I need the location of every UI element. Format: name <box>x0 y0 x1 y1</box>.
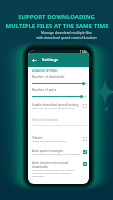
staticText: Settings <box>42 57 58 63</box>
button[interactable]: Number of parts <box>32 88 87 98</box>
staticText: Vibrate <box>32 136 43 140</box>
staticText: Auto resume downloading when network int… <box>32 169 81 178</box>
staticText: Manage download multiple files <box>41 30 92 35</box>
button[interactable]: Speed of download <box>32 118 87 122</box>
button[interactable]: Back <box>32 58 37 63</box>
staticText: Auto resume interrupted downloads <box>32 161 81 169</box>
button[interactable]: Auto resume interrupted downloads <box>32 161 87 178</box>
staticText: Automatically open download link on clip… <box>32 153 81 156</box>
button[interactable]: Enable download speed limiting <box>32 103 87 110</box>
staticText: Number of parts <box>32 88 57 92</box>
button[interactable]: Number of downloads <box>32 75 87 85</box>
staticText: Speed of download <box>32 118 59 122</box>
staticText: MULTIPLE FILES AT THE SAME TIME <box>5 22 109 30</box>
staticText: Limit traffic control your download spee… <box>32 107 75 110</box>
staticText: SUPPORT DOWNLOADING <box>18 13 95 21</box>
button[interactable]: Auto spam messages <box>32 149 87 156</box>
staticText: 11:45 <box>80 50 87 53</box>
button[interactable]: Vibrate <box>83 137 87 141</box>
staticText: Number of downloads <box>32 75 65 79</box>
staticText: Auto spam messages <box>32 149 63 153</box>
staticText: Enable download speed limiting <box>32 103 79 107</box>
button[interactable]: Auto resume interrupted downloads <box>83 162 87 166</box>
button[interactable]: Enable download speed limiting <box>83 104 87 108</box>
staticText: ADVANCED SETTINGS <box>32 69 58 72</box>
staticText: Vibrate after download complete <box>32 140 66 143</box>
staticText: with download speed control function <box>36 35 97 40</box>
button[interactable]: Auto spam messages <box>83 150 87 154</box>
button[interactable]: Vibrate <box>32 136 87 143</box>
